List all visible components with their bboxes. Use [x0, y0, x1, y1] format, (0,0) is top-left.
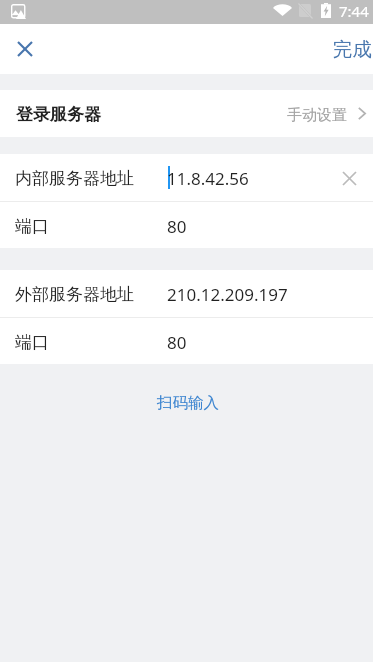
- staticText: 内部服务器地址: [15, 168, 134, 189]
- staticText: 端口: [15, 332, 49, 353]
- button[interactable]: Close: [0, 25, 48, 73]
- button[interactable]: 端口: [0, 318, 373, 364]
- staticText: 80: [167, 331, 187, 354]
- staticText: 登录服务器: [16, 104, 101, 125]
- staticText: 11.8.42.56: [167, 167, 249, 190]
- button[interactable]: 端口: [0, 202, 373, 248]
- staticText: 端口: [15, 216, 49, 237]
- button[interactable]: 完成: [317, 24, 373, 74]
- staticText: 外部服务器地址: [15, 284, 134, 305]
- staticText: 80: [167, 215, 187, 238]
- button[interactable]: 扫码输入: [0, 387, 373, 419]
- button[interactable]: Clear text: [327, 156, 371, 200]
- staticText: 手动设置: [287, 106, 347, 125]
- staticText: 7:44: [339, 1, 369, 21]
- button[interactable]: 登录服务器: [0, 90, 373, 137]
- button[interactable]: 外部服务器地址: [0, 270, 373, 317]
- staticText: 扫码输入: [157, 393, 219, 413]
- staticText: 210.12.209.197: [167, 283, 288, 306]
- button[interactable]: 内部服务器地址: [0, 154, 373, 201]
- staticText: 完成: [333, 37, 372, 62]
